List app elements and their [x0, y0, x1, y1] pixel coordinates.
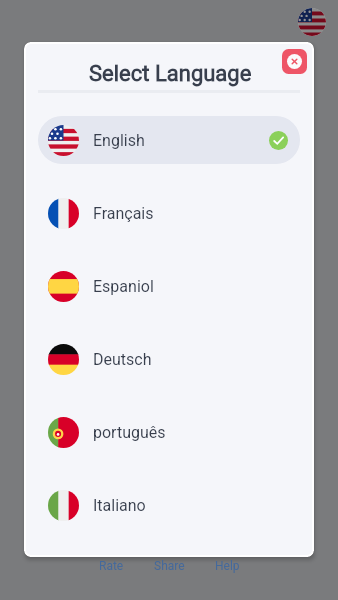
staticText: Français — [93, 204, 154, 223]
staticText: English — [93, 131, 145, 150]
staticText: Italiano — [93, 496, 146, 515]
staticText: português — [93, 423, 166, 442]
staticText: Rate — [99, 559, 124, 573]
button[interactable]: English — [38, 116, 300, 164]
staticText: Espaniol — [93, 277, 154, 296]
button[interactable]: Français — [38, 189, 300, 237]
button[interactable]: Espaniol — [38, 262, 300, 310]
button[interactable]: Current language — [298, 8, 326, 36]
button[interactable]: Share — [154, 559, 185, 573]
button[interactable]: Help — [215, 559, 240, 573]
staticText: Select Language — [89, 61, 252, 87]
button[interactable]: Close — [282, 49, 307, 74]
staticText: Deutsch — [93, 350, 152, 369]
button[interactable]: Deutsch — [38, 335, 300, 383]
button[interactable]: Rate — [99, 559, 124, 573]
staticText: Help — [215, 559, 240, 573]
button[interactable]: português — [38, 408, 300, 456]
staticText: Share — [154, 559, 185, 573]
button[interactable]: Italiano — [38, 481, 300, 529]
